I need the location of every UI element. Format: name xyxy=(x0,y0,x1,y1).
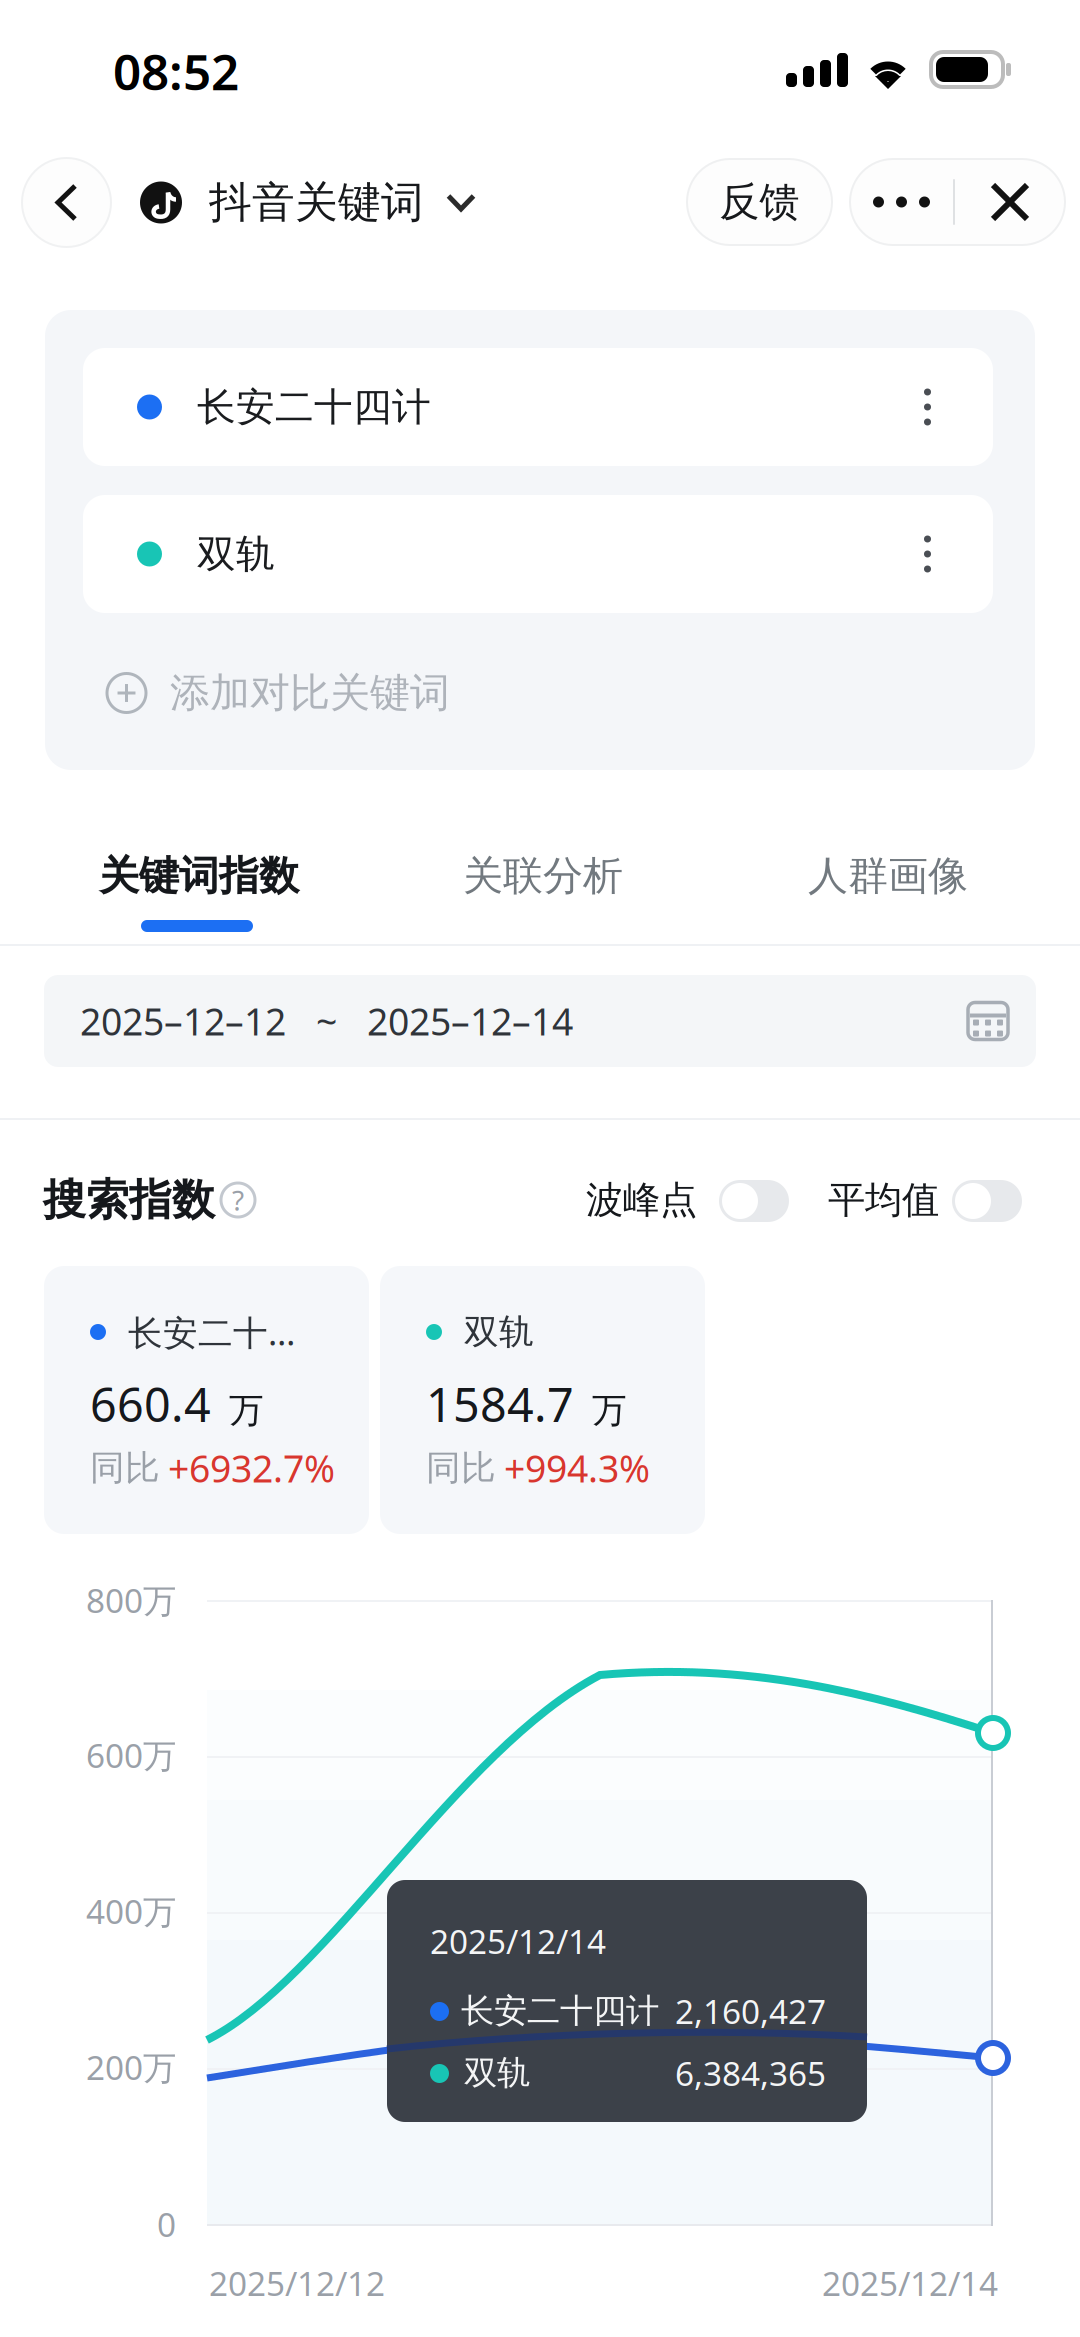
staticText: 2025/12/14 xyxy=(430,1919,606,1963)
staticText: 200万 xyxy=(86,2045,176,2089)
staticText: 400万 xyxy=(86,1889,176,1933)
button[interactable]: 添加对比关键词 xyxy=(83,647,993,739)
staticText: 2025/12/14 xyxy=(822,2261,998,2305)
staticText: 08:52 xyxy=(113,38,239,104)
button[interactable]: 抖音关键词 xyxy=(140,158,500,247)
staticText: 同比 xyxy=(426,1447,496,1489)
staticText: 660.4 xyxy=(90,1373,211,1435)
staticText: 0 xyxy=(157,2202,176,2246)
button[interactable]: Close xyxy=(955,159,1065,245)
button[interactable]: Average toggle xyxy=(952,1180,1022,1222)
button[interactable]: 人群画像 xyxy=(808,840,978,912)
staticText: 反馈 xyxy=(719,177,799,226)
staticText: +994.3% xyxy=(504,1443,650,1493)
button[interactable]: 长安二十四计 xyxy=(83,348,993,466)
staticText: ? xyxy=(232,1181,244,1219)
staticText: 长安二十四计 xyxy=(197,383,431,431)
staticText: 搜索指数 xyxy=(43,1174,215,1226)
staticText: 800万 xyxy=(86,1578,176,1622)
staticText: 万 xyxy=(592,1389,627,1432)
staticText: +6932.7% xyxy=(168,1443,335,1493)
button[interactable]: 双轨 xyxy=(83,495,993,613)
button[interactable]: Peak points toggle xyxy=(719,1180,789,1222)
staticText: 抖音关键词 xyxy=(209,176,424,229)
staticText: 万 xyxy=(229,1389,264,1432)
staticText: 2025–12–12 ~ 2025–12–14 xyxy=(80,996,573,1046)
button[interactable]: Back xyxy=(22,158,111,247)
staticText: 2025/12/12 xyxy=(209,2261,385,2305)
staticText: 1584.7 xyxy=(426,1373,574,1435)
staticText: 6,384,365 xyxy=(675,2051,826,2095)
button[interactable]: 关键词指数 xyxy=(99,840,309,912)
staticText: 2,160,427 xyxy=(675,1989,826,2033)
staticText: 波峰点 xyxy=(586,1177,697,1223)
button[interactable]: 2025–12–12 ~ 2025–12–14 xyxy=(44,975,1036,1067)
staticText: 长安二十四计 xyxy=(461,1990,659,2031)
staticText: 关键词指数 xyxy=(99,851,299,900)
staticText: 添加对比关键词 xyxy=(170,668,450,717)
button[interactable]: More options xyxy=(850,159,953,245)
button[interactable]: 关联分析 xyxy=(463,840,633,912)
staticText: 同比 xyxy=(90,1447,160,1489)
staticText: 关联分析 xyxy=(463,851,623,900)
staticText: 双轨 xyxy=(464,1311,534,1353)
staticText: 600万 xyxy=(86,1733,176,1777)
staticText: 平均值 xyxy=(828,1177,939,1223)
staticText: 人群画像 xyxy=(808,851,968,900)
staticText: 双轨 xyxy=(464,2052,530,2093)
staticText: 双轨 xyxy=(197,530,275,578)
button[interactable]: 反馈 xyxy=(687,159,832,245)
staticText: 长安二十… xyxy=(128,1309,295,1355)
